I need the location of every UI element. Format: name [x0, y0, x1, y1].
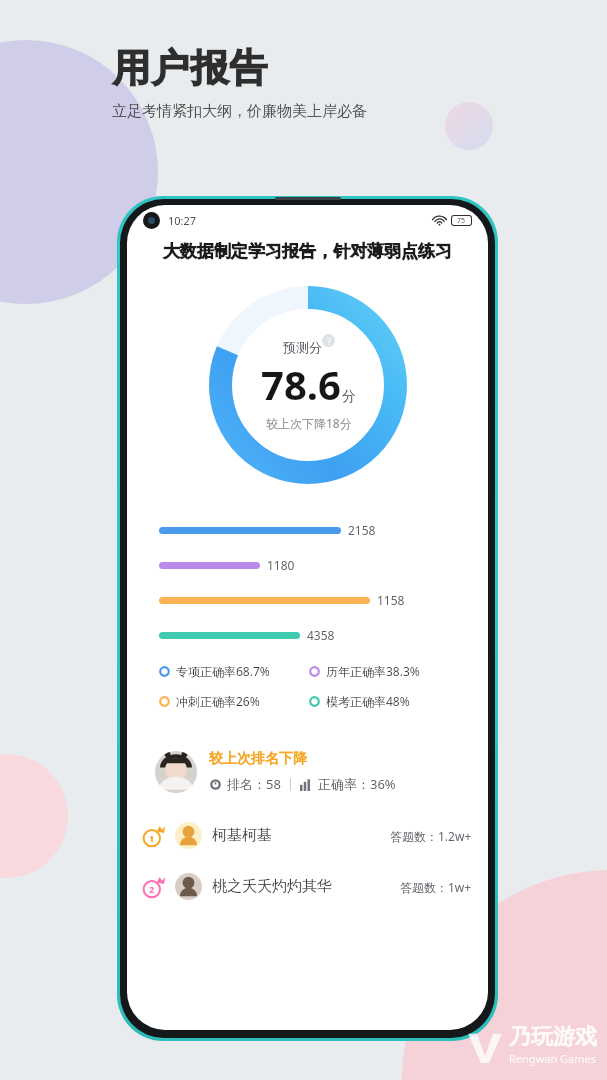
- button[interactable]: 专项正确率68.7%: [159, 663, 309, 679]
- staticText: 1180: [267, 557, 295, 573]
- staticText: 专项正确率68.7%: [176, 663, 270, 679]
- staticText: 用户报告: [112, 44, 268, 92]
- staticText: 乃玩游戏: [509, 1023, 597, 1051]
- button[interactable]: 模考正确率48%: [309, 693, 460, 709]
- button[interactable]: 2: [127, 861, 488, 912]
- button[interactable]: 历年正确率38.3%: [309, 663, 460, 679]
- staticText: 答题数：1w+: [400, 879, 472, 895]
- staticText: 预测分: [283, 339, 322, 355]
- staticText: 排名：58: [227, 775, 281, 793]
- button[interactable]: 1: [127, 810, 488, 861]
- staticText: Rengwan Games: [509, 1051, 597, 1066]
- staticText: 10:27: [168, 213, 197, 228]
- staticText: 较上次下降18分: [266, 415, 352, 431]
- staticText: 4358: [307, 627, 335, 643]
- staticText: 75: [457, 216, 466, 225]
- staticText: 较上次排名下降: [209, 750, 307, 768]
- staticText: 2158: [348, 522, 376, 538]
- staticText: 模考正确率48%: [326, 693, 410, 709]
- staticText: 1158: [377, 592, 405, 608]
- staticText: 立足考情紧扣大纲，价廉物美上岸必备: [112, 102, 367, 121]
- staticText: 柯基柯基: [212, 826, 272, 845]
- button[interactable]: 冲刺正确率26%: [159, 693, 309, 709]
- staticText: 正确率：36%: [318, 775, 396, 793]
- staticText: 2: [149, 883, 155, 895]
- button[interactable]: 较上次排名下降: [141, 739, 474, 804]
- staticText: 78.6: [261, 357, 341, 411]
- button[interactable]: 2158: [141, 502, 474, 727]
- staticText: 1: [149, 832, 155, 844]
- staticText: 冲刺正确率26%: [176, 693, 260, 709]
- staticText: 分: [342, 388, 356, 406]
- staticText: 答题数：1.2w+: [390, 828, 472, 844]
- button[interactable]: 说明: [322, 334, 335, 347]
- staticText: 桃之夭夭灼灼其华: [212, 877, 332, 896]
- staticText: 历年正确率38.3%: [326, 663, 420, 679]
- staticText: 大数据制定学习报告，针对薄弱点练习: [127, 241, 488, 262]
- staticText: ?: [327, 335, 331, 347]
